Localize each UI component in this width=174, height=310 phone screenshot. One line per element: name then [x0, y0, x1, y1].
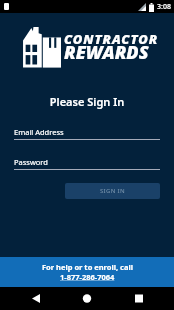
button[interactable] [28, 294, 44, 303]
staticText: REWARDS [64, 40, 149, 65]
staticText: For help or to enroll, call [42, 262, 133, 272]
staticText: CONTRACTOR [64, 30, 159, 48]
button[interactable] [79, 294, 95, 303]
staticText: 1-877-286-7064 [60, 272, 115, 282]
button[interactable]: SIGN IN [65, 183, 160, 199]
staticText: Password [14, 157, 48, 167]
button[interactable]: Email Address [14, 127, 160, 140]
staticText: Email Address [14, 127, 64, 137]
button[interactable] [131, 294, 147, 303]
staticText: 3:08 [157, 2, 171, 12]
button[interactable]: For help or to enroll, call [0, 257, 174, 287]
staticText: SIGN IN [100, 187, 125, 195]
button[interactable]: Password [14, 157, 160, 170]
staticText: Please Sign In [0, 94, 174, 109]
